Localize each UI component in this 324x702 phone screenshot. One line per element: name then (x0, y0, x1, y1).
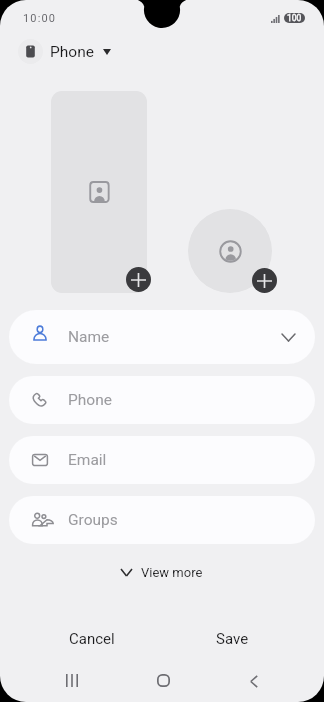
button[interactable]: View more (111, 560, 213, 585)
button[interactable]: Add photo (51, 91, 147, 293)
staticText: Groups (68, 511, 118, 529)
staticText: Phone (50, 43, 94, 61)
staticText: Name (68, 328, 110, 346)
button[interactable]: Email (9, 436, 315, 484)
staticText: Cancel (69, 630, 115, 648)
button[interactable]: Cancel (22, 621, 162, 657)
button[interactable]: Recents (49, 658, 95, 702)
staticText: Email (68, 451, 107, 469)
button[interactable]: Name (9, 310, 315, 364)
button[interactable]: Back (231, 658, 277, 702)
button[interactable]: Add photo (126, 267, 151, 292)
staticText: View more (141, 565, 203, 580)
staticText: Save (216, 630, 249, 648)
button[interactable]: Save (162, 621, 302, 657)
button[interactable]: Add caller ID (188, 209, 272, 293)
staticText: 100 (287, 13, 302, 23)
staticText: 10:00 (23, 12, 57, 25)
button[interactable]: Phone (9, 376, 315, 424)
button[interactable]: Add caller ID photo (252, 268, 277, 293)
staticText: Phone (68, 391, 112, 409)
button[interactable]: Phone (18, 39, 111, 64)
button[interactable]: Home (140, 658, 186, 702)
button[interactable]: Groups (9, 496, 315, 544)
